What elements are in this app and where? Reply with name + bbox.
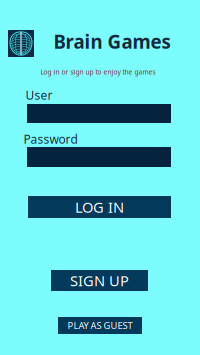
staticText: Log in or sign up to enjoy the games [40, 68, 155, 76]
staticText: LOG IN [75, 197, 124, 217]
staticText: Brain Games [53, 29, 170, 54]
button[interactable]: SIGN UP [51, 270, 148, 291]
staticText: Password [23, 131, 77, 147]
button[interactable]: PLAY AS GUEST [58, 317, 142, 334]
button[interactable]: LOG IN [28, 196, 171, 218]
staticText: SIGN UP [70, 271, 129, 290]
staticText: User [25, 87, 52, 103]
staticText: PLAY AS GUEST [67, 319, 132, 332]
